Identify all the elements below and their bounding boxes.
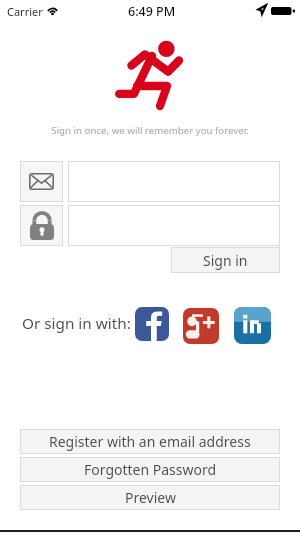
button[interactable]: Password — [20, 205, 63, 246]
button[interactable]: Sign in — [171, 247, 280, 273]
staticText: Register with an email address — [49, 432, 251, 451]
button[interactable]: Sign in with LinkedIn — [234, 307, 271, 344]
button[interactable]: Sign in with Facebook — [135, 307, 169, 341]
button[interactable]: Preview — [20, 485, 280, 510]
button[interactable] — [68, 161, 280, 202]
button[interactable]: Forgotten Password — [20, 457, 280, 482]
staticText: 6:49 PM — [128, 3, 176, 20]
staticText: Sign in once, we will remember you forev… — [51, 124, 249, 137]
staticText: Carrier — [7, 4, 43, 19]
button[interactable]: Email — [20, 161, 63, 202]
button[interactable] — [68, 205, 280, 246]
button[interactable]: Sign in with Google Plus — [183, 308, 219, 344]
button[interactable]: Register with an email address — [20, 429, 280, 454]
staticText: Forgotten Password — [84, 460, 217, 479]
staticText: Preview — [125, 488, 176, 507]
staticText: Or sign in with: — [22, 313, 131, 334]
staticText: Sign in — [203, 251, 248, 270]
